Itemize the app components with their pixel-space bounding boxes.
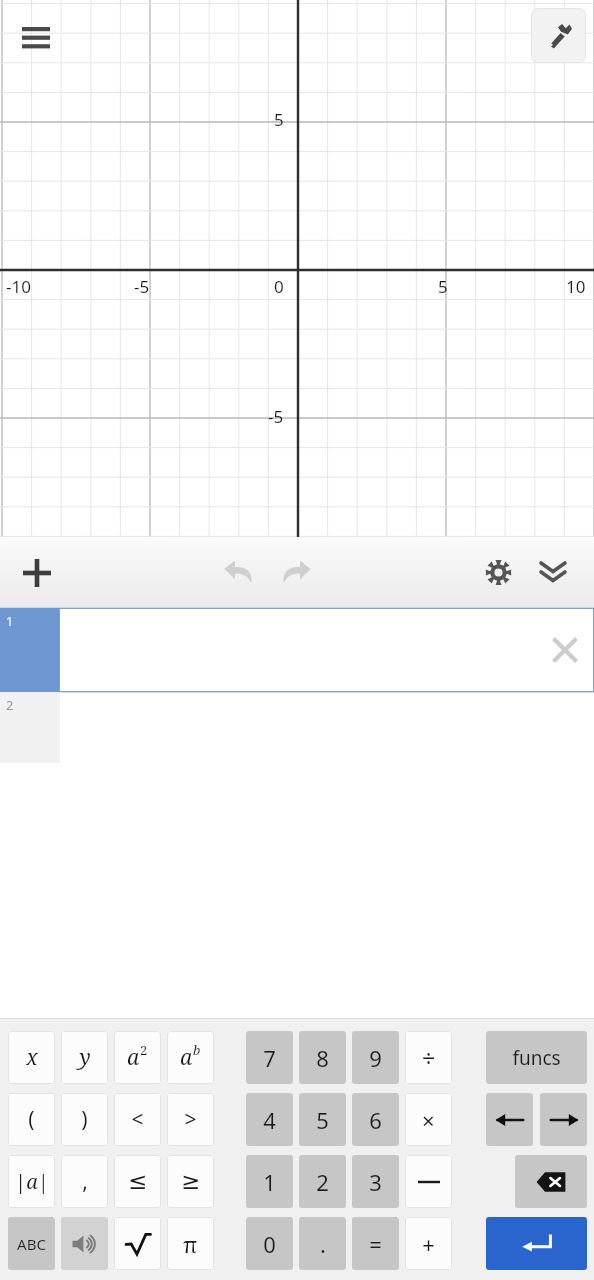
- staticText: a: [127, 1043, 140, 1072]
- staticText: ×: [422, 1105, 435, 1135]
- button[interactable]: Square root: [114, 1217, 161, 1270]
- staticText: =: [369, 1229, 382, 1259]
- button[interactable]: 8: [299, 1031, 346, 1084]
- staticText: ): [81, 1105, 88, 1134]
- staticText: b: [193, 1041, 201, 1059]
- staticText: y: [79, 1043, 91, 1072]
- staticText: a: [180, 1043, 193, 1072]
- button[interactable]: >: [167, 1093, 214, 1146]
- staticText: -5: [268, 405, 284, 428]
- staticText: 9: [369, 1043, 382, 1073]
- staticText: .: [320, 1229, 326, 1259]
- button[interactable]: 4: [246, 1093, 293, 1146]
- button[interactable]: Add expression: [14, 550, 60, 596]
- staticText: -10: [6, 275, 31, 298]
- button[interactable]: 2: [299, 1155, 346, 1208]
- staticText: funcs: [512, 1045, 561, 1071]
- button[interactable]: x: [8, 1031, 55, 1084]
- staticText: >: [184, 1105, 197, 1134]
- button[interactable]: .: [299, 1217, 346, 1270]
- staticText: |a|: [15, 1168, 49, 1195]
- button[interactable]: Settings: [476, 550, 520, 594]
- staticText: 3: [369, 1167, 382, 1197]
- button[interactable]: 1: [246, 1155, 293, 1208]
- button[interactable]: Backspace: [515, 1155, 587, 1208]
- button[interactable]: Minus: [405, 1155, 452, 1208]
- button[interactable]: +: [405, 1217, 452, 1270]
- button[interactable]: Less than or equal: [114, 1155, 161, 1208]
- staticText: x: [26, 1043, 38, 1072]
- staticText: 5: [274, 108, 284, 131]
- button[interactable]: Pi: [167, 1217, 214, 1270]
- button[interactable]: 5: [299, 1093, 346, 1146]
- staticText: +: [422, 1229, 435, 1259]
- button[interactable]: <: [114, 1093, 161, 1146]
- button[interactable]: Delete expression: [548, 633, 582, 667]
- staticText: 2: [6, 696, 14, 714]
- button[interactable]: Graph settings: [531, 8, 586, 63]
- staticText: -5: [134, 275, 150, 298]
- button[interactable]: 7: [246, 1031, 293, 1084]
- button[interactable]: y: [61, 1031, 108, 1084]
- button[interactable]: Move right: [540, 1093, 587, 1146]
- button[interactable]: 6: [352, 1093, 399, 1146]
- staticText: ≤: [128, 1168, 148, 1195]
- staticText: ≥: [181, 1168, 201, 1195]
- staticText: 2: [316, 1167, 329, 1197]
- staticText: 0: [263, 1229, 276, 1259]
- staticText: ABC: [17, 1234, 46, 1254]
- staticText: 7: [263, 1043, 276, 1073]
- staticText: 8: [316, 1043, 329, 1073]
- button[interactable]: 3: [352, 1155, 399, 1208]
- staticText: 1: [6, 612, 14, 630]
- button[interactable]: Squared: [114, 1031, 161, 1084]
- staticText: 0: [274, 275, 284, 298]
- staticText: ÷: [422, 1042, 436, 1073]
- button[interactable]: =: [352, 1217, 399, 1270]
- button[interactable]: Hide keypad: [531, 550, 575, 594]
- button[interactable]: Multiply: [405, 1093, 452, 1146]
- button[interactable]: 0: [246, 1217, 293, 1270]
- staticText: <: [131, 1105, 144, 1134]
- staticText: 5: [438, 275, 448, 298]
- button[interactable]: Divide: [405, 1031, 452, 1084]
- button[interactable]: Enter: [486, 1217, 587, 1270]
- staticText: ,: [82, 1167, 88, 1196]
- button[interactable]: 9: [352, 1031, 399, 1084]
- button[interactable]: ,: [61, 1155, 108, 1208]
- button[interactable]: Move left: [486, 1093, 533, 1146]
- button[interactable]: Menu: [14, 14, 58, 58]
- button[interactable]: Redo: [275, 550, 319, 594]
- button[interactable]: ): [61, 1093, 108, 1146]
- button[interactable]: Exponent: [167, 1031, 214, 1084]
- staticText: 5: [316, 1105, 329, 1135]
- staticText: (: [28, 1105, 35, 1134]
- staticText: 10: [566, 275, 586, 298]
- button[interactable]: 2: [0, 692, 594, 763]
- button[interactable]: Audio: [61, 1217, 108, 1270]
- staticText: 2: [140, 1041, 148, 1059]
- button[interactable]: funcs: [486, 1031, 587, 1084]
- staticText: 4: [263, 1105, 276, 1135]
- staticText: 6: [369, 1105, 382, 1135]
- button[interactable]: Absolute value: [8, 1155, 55, 1208]
- button[interactable]: Undo: [216, 550, 260, 594]
- button[interactable]: ABC: [8, 1217, 55, 1270]
- button[interactable]: (: [8, 1093, 55, 1146]
- button[interactable]: 1: [0, 608, 594, 692]
- button[interactable]: Greater than or equal: [167, 1155, 214, 1208]
- staticText: 1: [263, 1167, 276, 1197]
- staticText: π: [183, 1229, 198, 1259]
